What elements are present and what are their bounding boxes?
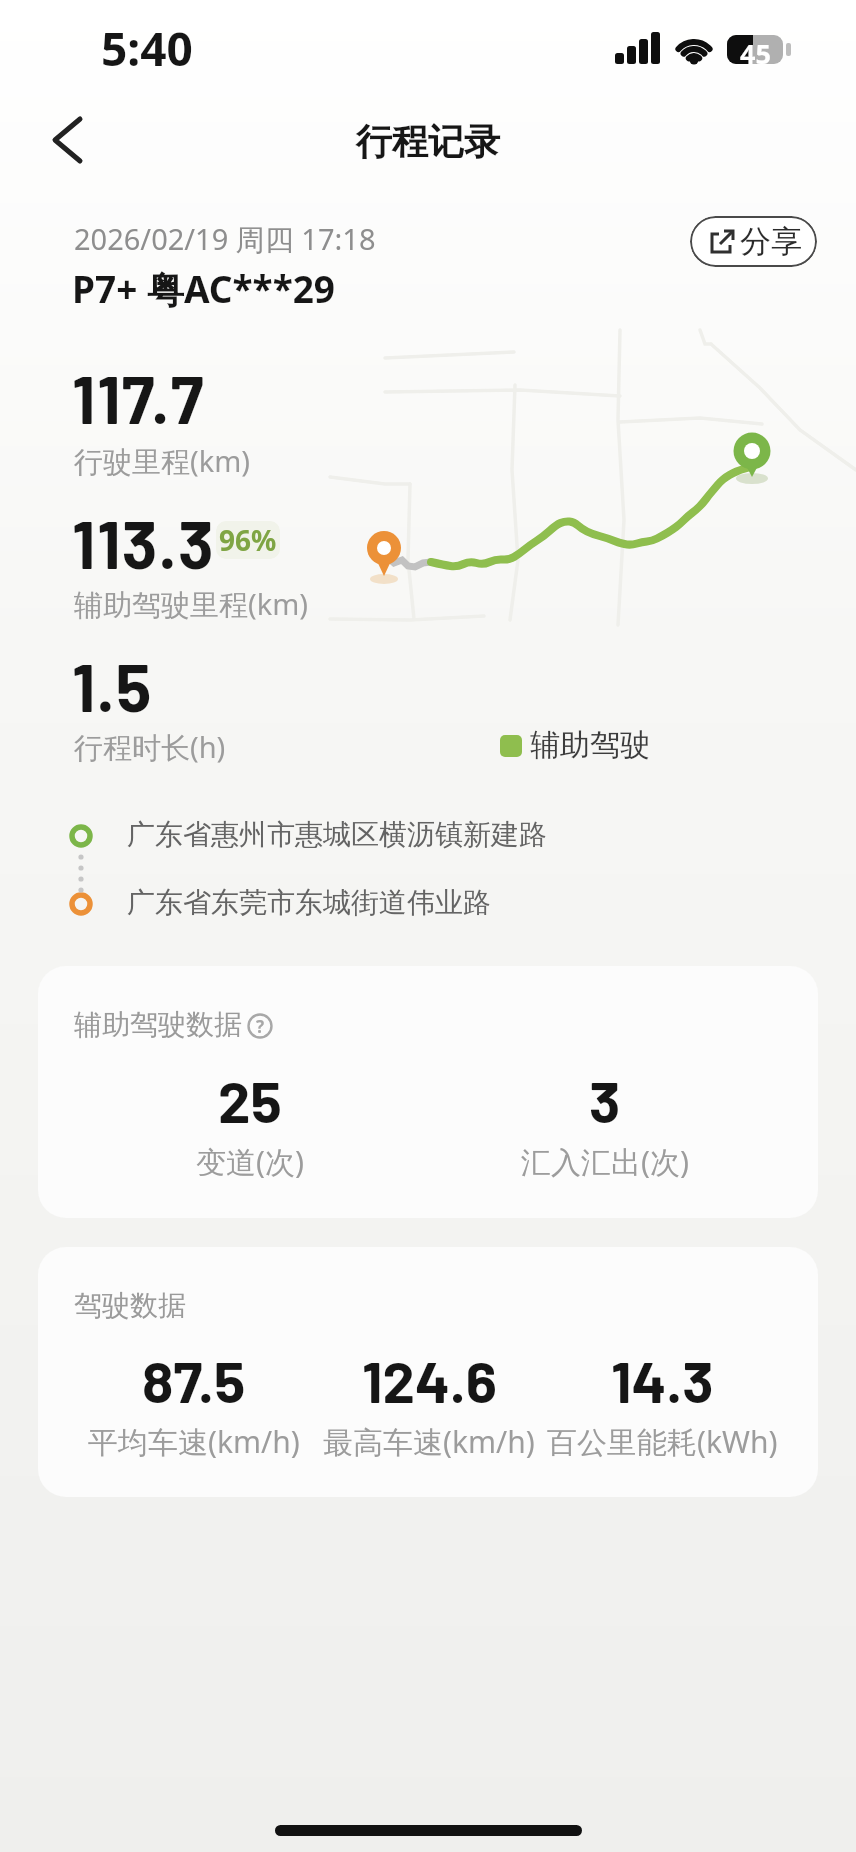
staticText: P7+ 粤AC***29	[72, 263, 336, 314]
staticText: 辅助驾驶	[530, 726, 650, 764]
staticText: 广东省惠州市惠城区横沥镇新建路	[127, 817, 547, 852]
button[interactable]	[38, 103, 108, 177]
staticText: 驾驶数据	[74, 1288, 186, 1323]
staticText: 5:40	[101, 17, 193, 80]
staticText: 25	[218, 1065, 282, 1135]
staticText: 96%	[219, 521, 277, 559]
staticText: 最高车速(km/h)	[323, 1421, 535, 1461]
staticText: 1.5	[72, 646, 153, 725]
button[interactable]: 分享	[690, 216, 817, 267]
staticText: 行驶里程(km)	[74, 441, 251, 481]
staticText: 辅助驾驶数据	[74, 1007, 242, 1042]
staticText: 汇入汇出(次)	[521, 1141, 689, 1181]
button[interactable]: ?	[246, 1012, 274, 1040]
staticText: 平均车速(km/h)	[88, 1421, 300, 1461]
staticText: 百公里能耗(kWh)	[547, 1421, 778, 1461]
staticText: 辅助驾驶里程(km)	[74, 584, 309, 624]
staticText: 变道(次)	[196, 1141, 304, 1181]
staticText: 124.6	[362, 1345, 497, 1415]
staticText: 行程时长(h)	[74, 727, 226, 767]
staticText: 113.3	[72, 503, 215, 582]
staticText: 14.3	[611, 1345, 714, 1415]
staticText: 3	[589, 1065, 621, 1135]
staticText: 117.7	[72, 358, 205, 437]
staticText: 87.5	[142, 1345, 246, 1415]
staticText: 分享	[740, 222, 802, 261]
staticText: 2026/02/19 周四 17:18	[74, 219, 376, 259]
staticText: ?	[256, 1015, 265, 1038]
staticText: 行程记录	[356, 119, 500, 164]
staticText: 广东省东莞市东城街道伟业路	[127, 885, 491, 920]
staticText: 45	[740, 35, 771, 64]
